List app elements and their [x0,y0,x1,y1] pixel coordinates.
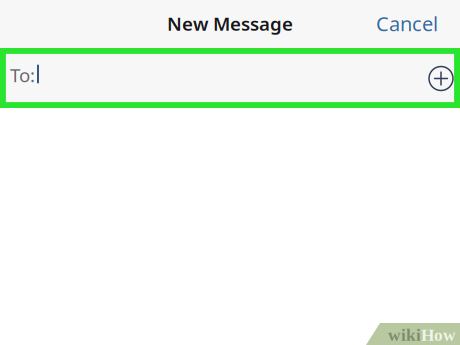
staticText: How [421,325,456,345]
button[interactable]: Add contact [422,48,460,107]
button[interactable]: Cancel [376,11,460,37]
button[interactable]: To: [0,48,422,107]
staticText: New Message [167,11,293,36]
staticText: To: [10,63,35,87]
staticText: wiki [388,325,421,345]
staticText: Cancel [376,10,438,37]
